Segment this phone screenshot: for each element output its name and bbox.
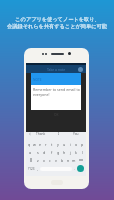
staticText: OK <box>54 113 59 117</box>
staticText: e <box>39 142 42 147</box>
staticText: x <box>43 158 45 163</box>
staticText: b <box>61 158 64 163</box>
staticText: r <box>45 142 47 147</box>
staticText: t <box>51 142 53 147</box>
staticText: o <box>75 142 78 147</box>
staticText: Take a note <box>47 67 66 72</box>
staticText: z <box>37 158 39 163</box>
staticText: l <box>82 150 83 155</box>
staticText: w <box>33 142 36 147</box>
button[interactable]: Enter <box>77 165 84 172</box>
staticText: f <box>51 150 53 155</box>
staticText: I <box>58 132 60 136</box>
staticText: h <box>63 150 66 155</box>
staticText: q <box>28 142 31 147</box>
staticText: p <box>81 142 84 147</box>
staticText: c <box>49 158 51 163</box>
staticText: Thank <box>36 132 46 136</box>
staticText: i <box>70 142 71 147</box>
staticText: a <box>29 150 32 155</box>
staticText: , <box>37 167 38 171</box>
staticText: ?123 <box>28 167 35 171</box>
staticText: k <box>75 150 77 155</box>
staticText: n <box>67 158 70 163</box>
button[interactable]: Account <box>78 67 83 72</box>
staticText: j <box>70 150 71 155</box>
staticText: You <box>73 132 79 136</box>
staticText: . <box>74 167 75 171</box>
staticText: u <box>63 142 66 147</box>
staticText: y <box>57 142 59 147</box>
staticText: このアプリを使ってノートを取り、 <box>15 16 100 23</box>
staticText: 会議録それらを共有することが簡単に可能 <box>7 23 107 30</box>
staticText: Remember to send email to everyone! <box>33 87 81 97</box>
staticText: g <box>57 150 60 155</box>
staticText: d <box>43 150 46 155</box>
staticText: NOTE <box>33 78 42 82</box>
staticText: v <box>55 158 57 163</box>
staticText: m <box>72 158 76 163</box>
staticText: s <box>37 150 39 155</box>
